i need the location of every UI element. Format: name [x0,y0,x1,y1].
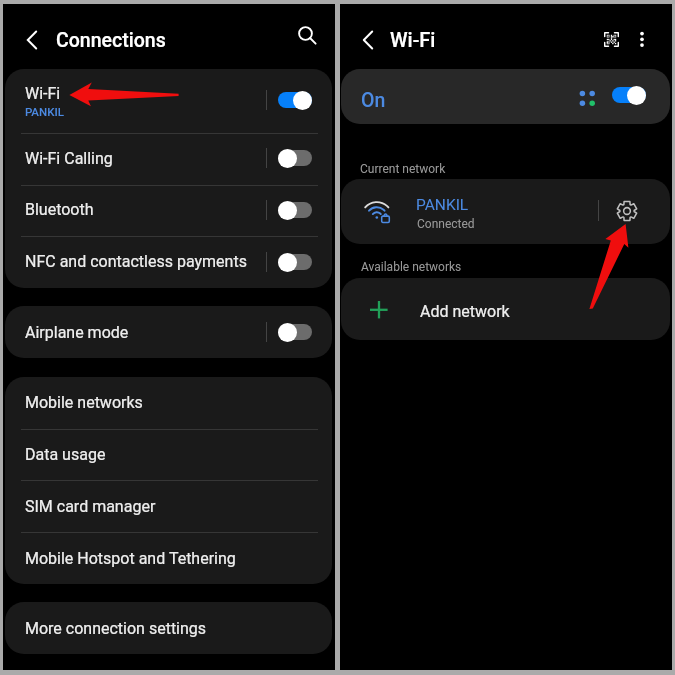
staticText: Available networks [361,260,462,274]
staticText: On [361,89,386,112]
button[interactable] [5,377,332,584]
staticText: NFC and contactless payments [25,252,247,271]
staticText: Connections [56,29,166,52]
button[interactable] [5,306,332,358]
button[interactable] [341,179,670,244]
button[interactable]: Airplane mode [278,322,312,342]
button[interactable]: Navigate up [351,23,385,57]
button[interactable]: Wi-Fi [278,90,312,110]
staticText: Mobile Hotspot and Tethering [25,549,236,568]
button[interactable]: Scan QR code [597,25,625,53]
button[interactable] [5,69,332,288]
staticText: Wi-Fi Calling [25,149,113,168]
button[interactable]: Bluetooth [278,200,312,220]
button[interactable]: NFC and contactless payments [278,252,312,272]
staticText: Mobile networks [25,393,143,412]
button[interactable]: Wi-Fi [612,85,646,105]
staticText: SIM card manager [25,497,156,516]
staticText: Bluetooth [25,200,94,219]
staticText: Wi-Fi [390,28,436,51]
button[interactable] [341,69,670,124]
button[interactable]: Navigate up [15,23,49,57]
button[interactable]: Wi-Fi Calling [278,148,312,168]
staticText: PANKIL [416,196,469,214]
button[interactable]: More options [628,25,656,53]
button[interactable] [5,602,332,654]
staticText: Airplane mode [25,323,129,342]
button[interactable]: Search [289,18,323,52]
staticText: Data usage [25,445,106,464]
staticText: Current network [360,162,446,176]
staticText: Add network [420,302,510,321]
staticText: PANKIL [25,105,64,118]
button[interactable]: Network settings [613,197,641,225]
staticText: Wi-Fi [25,84,61,103]
staticText: More connection settings [25,619,207,638]
button[interactable] [341,278,670,340]
staticText: Connected [417,217,475,231]
